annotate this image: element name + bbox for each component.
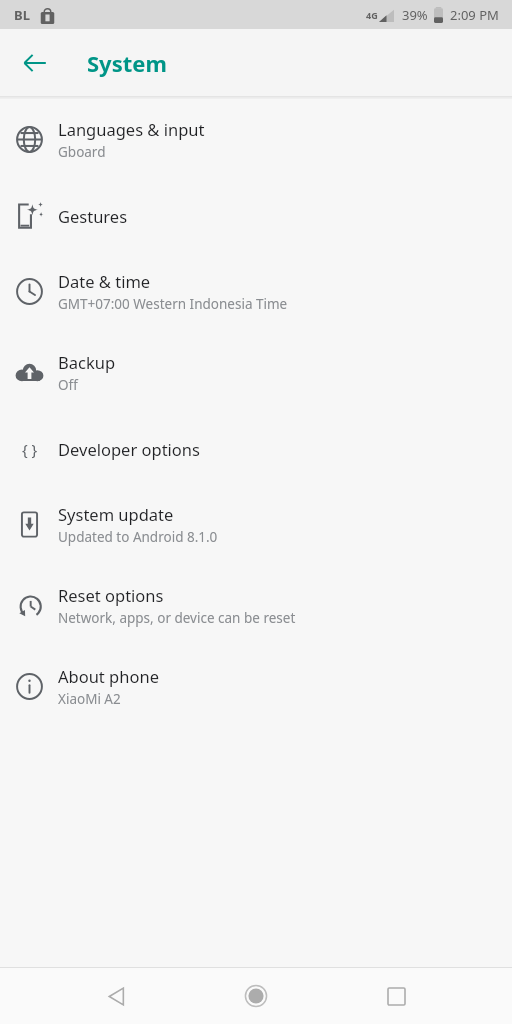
- staticText: 39%: [402, 6, 428, 24]
- staticText: System update: [58, 503, 174, 525]
- staticText: Reset options: [58, 584, 164, 606]
- staticText: Date & time: [58, 270, 151, 292]
- button[interactable]: { }: [0, 413, 512, 484]
- button[interactable]: Back: [12, 40, 58, 86]
- button[interactable]: Back: [92, 972, 140, 1020]
- button[interactable]: System update: [0, 484, 512, 565]
- staticText: System: [87, 48, 167, 78]
- staticText: GMT+07:00 Western Indonesia Time: [58, 295, 288, 313]
- button[interactable]: Reset options: [0, 565, 512, 646]
- staticText: BL: [14, 6, 30, 24]
- button[interactable]: Recent apps: [372, 972, 420, 1020]
- button[interactable]: Backup: [0, 332, 512, 413]
- button[interactable]: About phone: [0, 646, 512, 727]
- button[interactable]: Languages & input: [0, 99, 512, 180]
- staticText: About phone: [58, 665, 159, 687]
- staticText: Languages & input: [58, 118, 205, 140]
- staticText: Backup: [58, 351, 116, 373]
- staticText: XiaoMi A2: [58, 690, 121, 708]
- staticText: Gboard: [58, 143, 106, 161]
- button[interactable]: Date & time: [0, 251, 512, 332]
- staticText: Gestures: [58, 205, 128, 227]
- staticText: 2:09 PM: [450, 6, 499, 24]
- staticText: Off: [58, 376, 78, 394]
- button[interactable]: Home: [232, 972, 280, 1020]
- staticText: Developer options: [58, 438, 200, 460]
- staticText: 4G: [366, 9, 378, 21]
- staticText: Network, apps, or device can be reset: [58, 609, 296, 627]
- button[interactable]: Gestures: [0, 180, 512, 251]
- staticText: Updated to Android 8.1.0: [58, 528, 218, 546]
- staticText: { }: [22, 439, 38, 459]
